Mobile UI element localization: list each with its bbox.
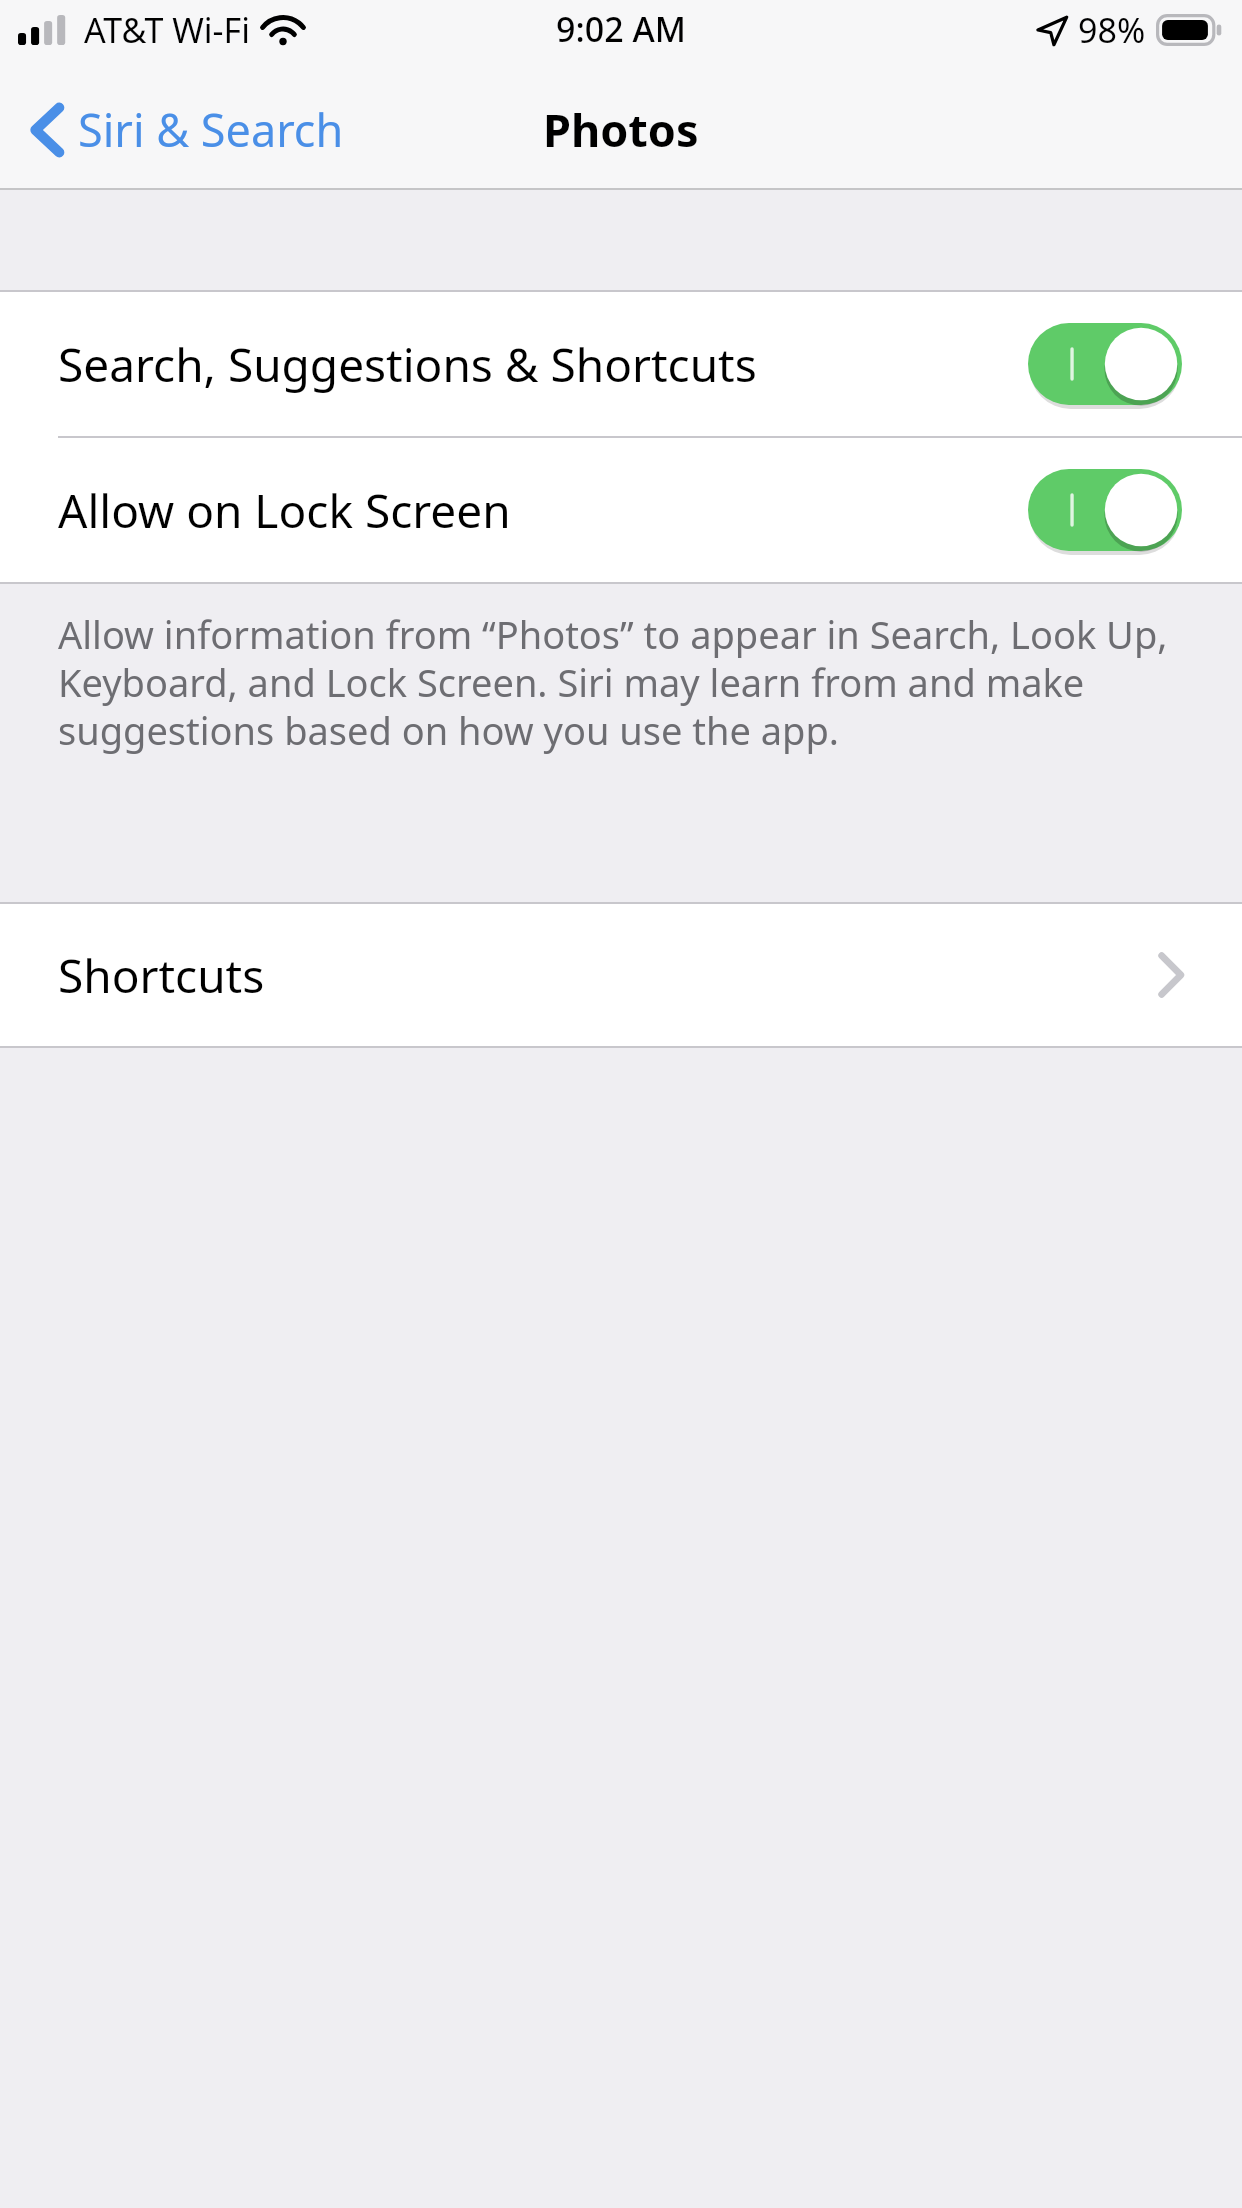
staticText: Shortcuts <box>58 944 1158 1007</box>
staticText: Allow information from “Photos” to appea… <box>58 608 1194 756</box>
staticText: Search, Suggestions & Shortcuts <box>58 333 1028 396</box>
button[interactable]: Allow on Lock Screen <box>0 438 1242 582</box>
staticText: Photos <box>543 99 699 160</box>
button[interactable]: Toggle <box>1028 322 1182 406</box>
button[interactable]: Toggle <box>1028 468 1182 552</box>
button[interactable]: Siri & Search <box>0 89 368 170</box>
staticText: 9:02 AM <box>556 6 686 52</box>
button[interactable]: Search, Suggestions & Shortcuts <box>0 292 1242 436</box>
staticText: Allow on Lock Screen <box>58 479 1028 542</box>
staticText: Siri & Search <box>78 99 344 160</box>
staticText: AT&T Wi-Fi <box>84 7 250 53</box>
button[interactable]: Shortcuts <box>0 904 1242 1046</box>
staticText: 98% <box>1078 7 1146 53</box>
